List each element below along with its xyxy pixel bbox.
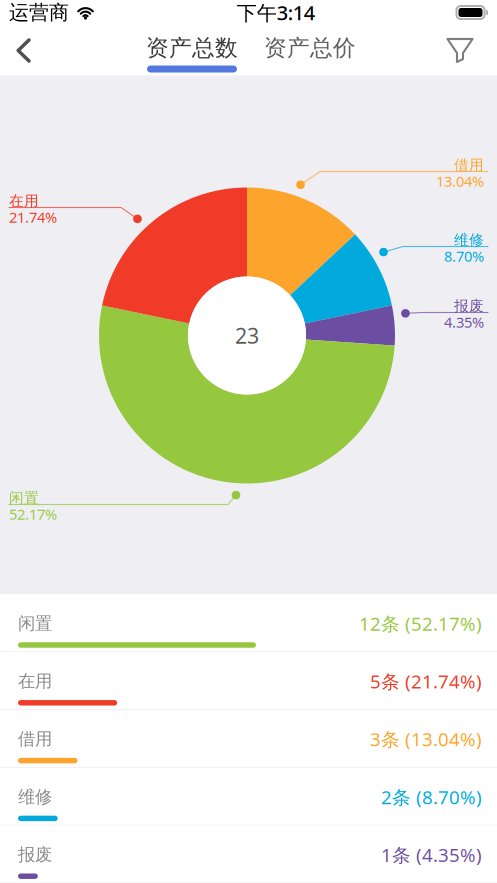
staticText: 5条 (21.74%) xyxy=(370,669,482,694)
staticText: 维修 xyxy=(18,786,52,808)
staticText: 维修 xyxy=(454,231,484,249)
staticText: 在用 xyxy=(18,671,52,692)
button[interactable]: 维修 xyxy=(0,768,497,826)
staticText: 下午3:14 xyxy=(237,0,315,26)
staticText: 23 xyxy=(235,321,259,350)
button[interactable]: 在用 xyxy=(0,652,497,710)
staticText: 闲置 xyxy=(9,489,39,507)
staticText: 借用 xyxy=(454,156,484,174)
staticText: 52.17% xyxy=(9,504,57,524)
staticText: 在用 xyxy=(9,192,39,210)
staticText: 资产总价 xyxy=(264,34,356,62)
staticText: 报废 xyxy=(18,844,52,865)
button[interactable]: 资产总价 xyxy=(264,34,356,72)
button[interactable]: 报废 xyxy=(0,826,497,883)
button[interactable]: 闲置 xyxy=(0,594,497,652)
staticText: 报废 xyxy=(454,297,484,315)
button[interactable]: 返回 xyxy=(0,25,46,75)
button[interactable]: 资产总数 xyxy=(146,34,238,72)
button[interactable]: 借用 xyxy=(0,710,497,768)
staticText: 3条 (13.04%) xyxy=(370,727,482,751)
staticText: 13.04% xyxy=(436,171,484,191)
staticText: 4.35% xyxy=(444,312,484,332)
staticText: 闲置 xyxy=(18,613,52,634)
staticText: 运营商 xyxy=(9,0,69,25)
staticText: 2条 (8.70%) xyxy=(381,784,482,809)
button[interactable]: 筛选 xyxy=(435,25,485,75)
staticText: 8.70% xyxy=(444,246,484,266)
staticText: 12条 (52.17%) xyxy=(359,611,482,636)
staticText: 资产总数 xyxy=(146,34,238,62)
staticText: 借用 xyxy=(18,728,52,750)
staticText: 21.74% xyxy=(9,207,57,227)
staticText: 1条 (4.35%) xyxy=(381,842,482,867)
